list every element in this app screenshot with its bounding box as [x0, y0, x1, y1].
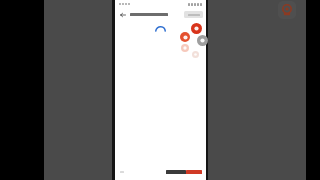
button[interactable]: More — [197, 35, 208, 46]
button[interactable]: Gallery — [181, 44, 189, 52]
button[interactable] — [166, 169, 202, 174]
button[interactable]: Record — [278, 1, 296, 19]
button[interactable] — [184, 11, 203, 18]
button[interactable]: Settings — [192, 51, 199, 58]
button[interactable]: Camera — [180, 32, 190, 42]
button[interactable]: Add — [191, 23, 202, 34]
button[interactable]: Back — [118, 10, 127, 19]
